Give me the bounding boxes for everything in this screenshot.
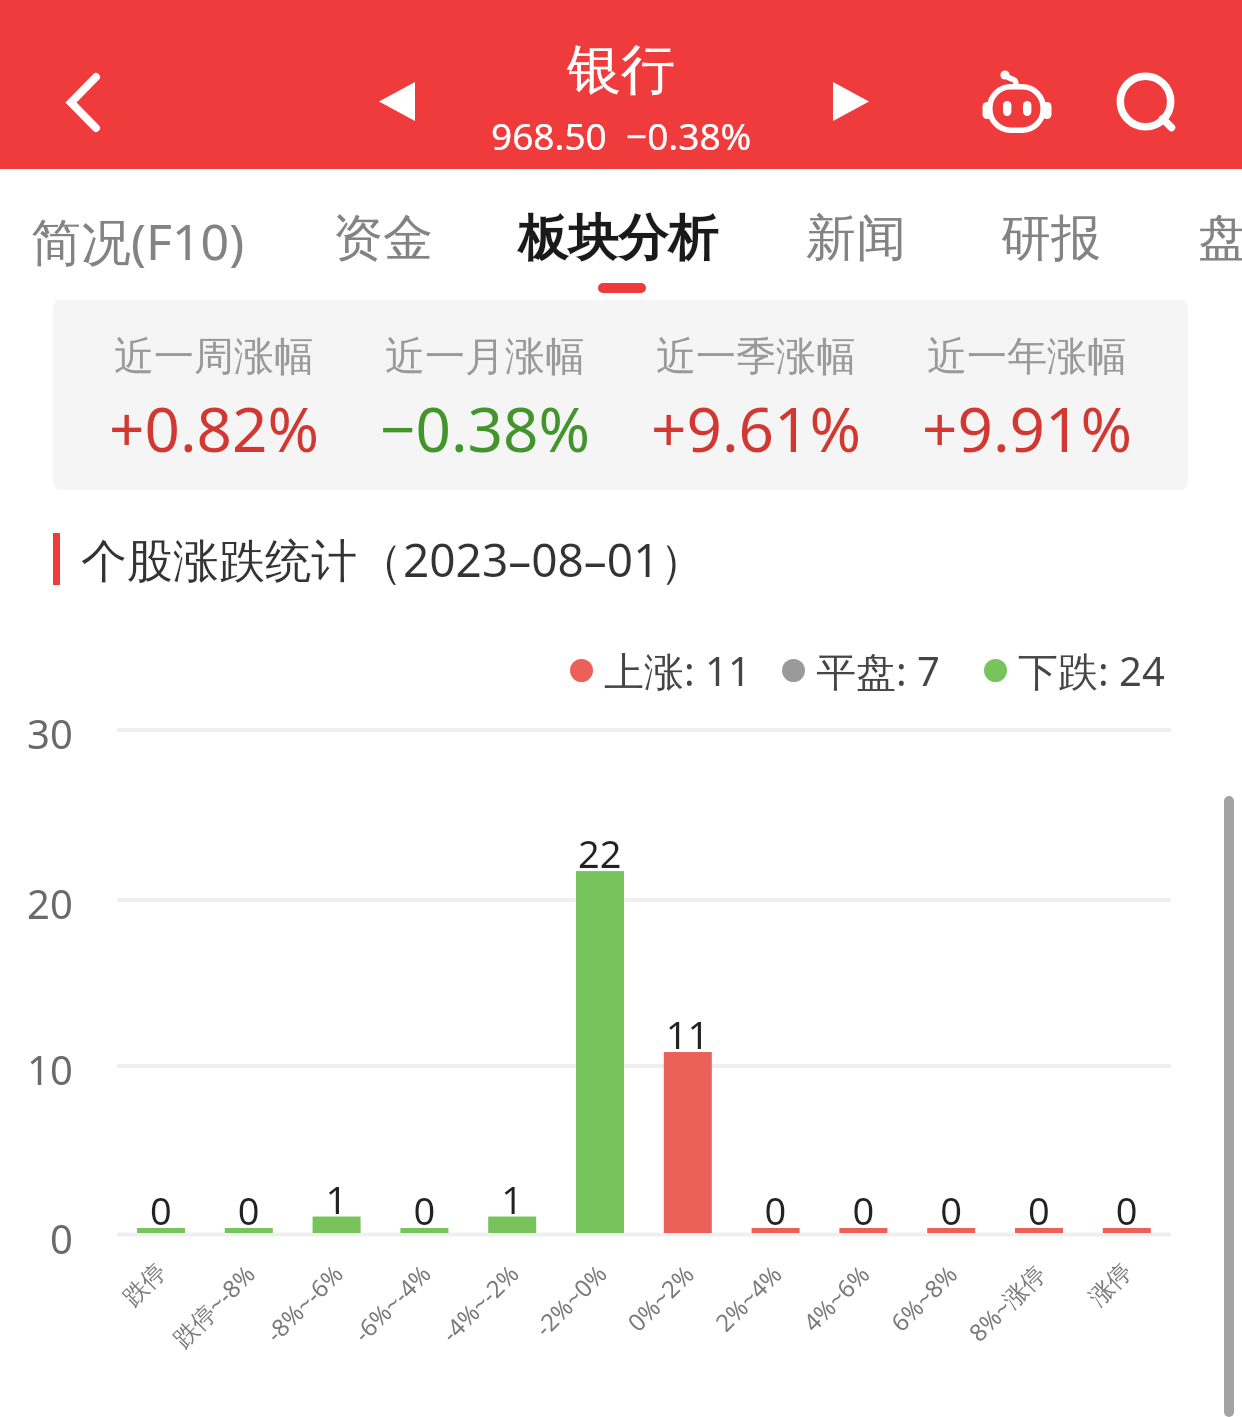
button[interactable]: 银行 xyxy=(0,36,1242,160)
staticText: 银行 xyxy=(567,36,675,104)
staticText: +9.61% xyxy=(651,386,861,470)
button[interactable]: AI assistant xyxy=(962,46,1072,154)
button[interactable]: 上涨: 11 xyxy=(570,640,751,700)
button[interactable]: 新闻 xyxy=(806,169,906,300)
staticText: 近一季涨幅 xyxy=(656,331,856,381)
button[interactable]: 资金 xyxy=(333,169,433,300)
staticText: 上涨: 11 xyxy=(604,643,751,698)
staticText: 近一周涨幅 xyxy=(114,331,314,381)
staticText: 简况(F10) xyxy=(31,207,245,275)
staticText: 盘 xyxy=(1198,207,1242,270)
button[interactable]: 盘 xyxy=(1198,169,1242,300)
button[interactable]: 简况(F10) xyxy=(31,169,245,300)
staticText: 资金 xyxy=(333,207,433,270)
button[interactable]: 研报 xyxy=(1001,169,1101,300)
button[interactable]: 近一周涨幅 xyxy=(53,300,1188,490)
button[interactable]: 下跌: 24 xyxy=(984,640,1165,700)
staticText: 个股涨跌统计（2023–08–01） xyxy=(81,528,706,591)
staticText: −0.38% xyxy=(380,386,590,470)
button[interactable]: 平盘: 7 xyxy=(782,640,940,700)
button[interactable]: Search xyxy=(1094,46,1198,156)
staticText: 下跌: 24 xyxy=(1018,643,1165,698)
button[interactable]: 板块分析 xyxy=(518,169,718,300)
staticText: 近一月涨幅 xyxy=(385,331,585,381)
staticText: 平盘: 7 xyxy=(816,643,940,698)
staticText: +9.91% xyxy=(922,386,1132,470)
staticText: 新闻 xyxy=(806,207,906,270)
staticText: +0.82% xyxy=(109,386,319,470)
button[interactable]: Back xyxy=(16,36,116,136)
staticText: 板块分析 xyxy=(518,207,718,270)
button[interactable]: Previous sector xyxy=(351,69,443,134)
staticText: 研报 xyxy=(1001,207,1101,270)
staticText: 近一年涨幅 xyxy=(927,331,1127,381)
button[interactable]: Next sector xyxy=(805,69,897,134)
staticText: 968.50 −0.38% xyxy=(491,110,752,160)
